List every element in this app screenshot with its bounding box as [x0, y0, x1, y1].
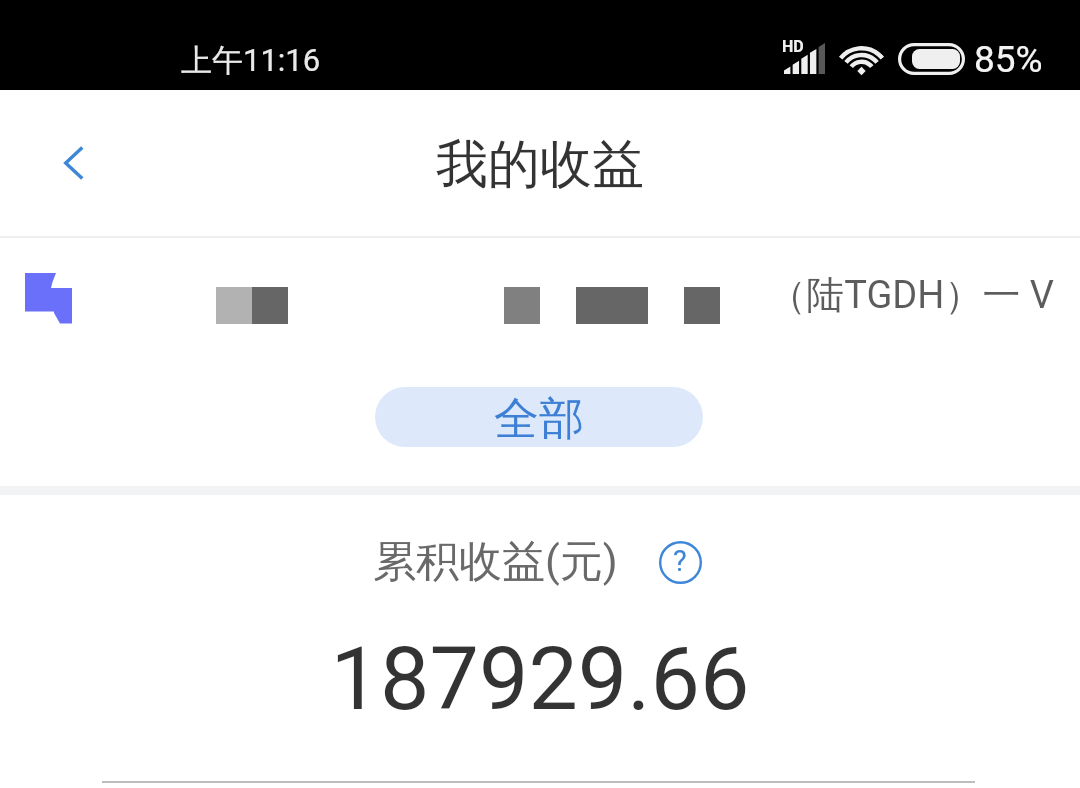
staticText: 85%: [974, 38, 1043, 81]
staticText: （陆TGDH）一 V: [0, 271, 1054, 319]
button[interactable]: 全部: [375, 387, 703, 447]
staticText: 上午11:16: [181, 41, 321, 80]
staticText: 累积收益(元): [373, 535, 618, 589]
button[interactable]: （陆TGDH）一 V: [0, 236, 1080, 376]
staticText: HD: [782, 37, 804, 56]
staticText: 全部: [494, 391, 584, 447]
staticText: 187929.66: [0, 627, 1080, 730]
button[interactable]: Help: [656, 538, 704, 586]
staticText: 我的收益: [436, 132, 644, 198]
button[interactable]: Back: [24, 113, 124, 213]
staticText: ?: [673, 544, 687, 578]
